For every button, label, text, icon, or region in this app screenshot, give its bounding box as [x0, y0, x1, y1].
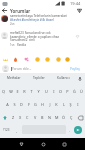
staticText: 1sn — [10, 43, 15, 47]
button[interactable]: Fire — [12, 56, 18, 62]
button[interactable]: L — [60, 98, 67, 111]
staticText: B — [41, 115, 44, 120]
button[interactable]: Kullanıcı — [57, 76, 70, 80]
button[interactable]: Ü — [78, 85, 85, 98]
staticText: L — [63, 102, 65, 107]
staticText: Q — [2, 89, 5, 94]
button[interactable]: A — [4, 98, 11, 111]
staticText: Ö — [62, 115, 65, 120]
button[interactable]: mefteE23 Sonuclandi ve cok — [0, 31, 85, 48]
staticText: mefteE23 Sonuclandi ve cok — [10, 31, 51, 35]
button[interactable]: Paylaş — [69, 66, 81, 72]
staticText: Paylaş — [70, 67, 80, 71]
staticText: W — [9, 89, 13, 94]
staticText: X — [19, 115, 22, 120]
staticText: K — [55, 102, 58, 107]
staticText: J — [49, 102, 51, 107]
button[interactable]: I — [74, 98, 81, 111]
button[interactable]: X — [17, 111, 24, 124]
button[interactable]: P — [64, 85, 71, 98]
staticText: D — [20, 102, 23, 107]
button[interactable]: O — [57, 85, 64, 98]
button[interactable]: F — [25, 98, 32, 111]
button[interactable]: Ğ — [71, 85, 78, 98]
staticText: Ş — [69, 102, 72, 107]
staticText: ?123 — [3, 128, 10, 132]
staticText: Sonudhost2 cinli — [10, 38, 35, 42]
button[interactable]: , — [13, 124, 21, 136]
button[interactable]: H — [39, 98, 46, 111]
button[interactable]: R — [21, 85, 28, 98]
staticText: Ç — [70, 115, 73, 120]
button[interactable]: Ç — [68, 111, 75, 124]
button[interactable]: Back — [0, 7, 9, 14]
button[interactable]: B — [39, 111, 46, 124]
button[interactable]: Wow — [55, 56, 61, 62]
button[interactable]: Methalar — [7, 76, 21, 80]
staticText: . — [69, 128, 71, 133]
staticText: F — [28, 102, 30, 107]
staticText: N — [48, 115, 51, 120]
staticText: 19:44 — [70, 1, 81, 6]
button[interactable]: Backspace — [76, 111, 85, 124]
button[interactable]: Sparkles — [23, 56, 29, 62]
staticText: E — [16, 89, 19, 94]
button[interactable]: Like — [74, 33, 80, 39]
button[interactable]: G — [32, 98, 39, 111]
button[interactable]: J — [46, 98, 53, 111]
button[interactable]: K — [53, 98, 60, 111]
button[interactable]: Home — [37, 138, 49, 150]
button[interactable]: M — [53, 111, 60, 124]
button[interactable]: E — [14, 85, 21, 98]
button[interactable]: sametcetinkaya Telefonlarin kameralari — [0, 14, 85, 30]
staticText: O — [59, 89, 62, 94]
button[interactable]: Laughing — [34, 56, 40, 62]
button[interactable]: V — [32, 111, 39, 124]
button[interactable]: Back — [15, 138, 27, 150]
staticText: C — [26, 115, 29, 120]
staticText: V — [34, 115, 37, 120]
button[interactable]: N — [46, 111, 53, 124]
button[interactable]: ?123 — [0, 124, 13, 136]
button[interactable]: W — [7, 85, 14, 98]
button[interactable]: Q — [0, 85, 7, 98]
button[interactable]: Crying — [44, 56, 50, 62]
staticText: 2sn — [10, 22, 15, 26]
staticText: G — [34, 102, 37, 107]
staticText: , — [16, 128, 18, 133]
button[interactable]: Crown — [2, 56, 8, 62]
button[interactable]: C — [24, 111, 31, 124]
staticText: Y — [37, 89, 40, 94]
button[interactable]: Voice input — [76, 75, 83, 82]
button[interactable]: U — [43, 85, 50, 98]
staticText: Ü — [80, 89, 83, 94]
button[interactable]: Shift — [0, 111, 9, 124]
staticText: I — [53, 89, 55, 94]
button[interactable]: Tepkiler — [33, 76, 45, 80]
staticText: S — [13, 102, 16, 107]
staticText: Yorum ekle... — [12, 67, 32, 71]
staticText: sametcetinkaya Telefonlarin kameralari — [10, 14, 68, 18]
button[interactable]: Share — [76, 7, 83, 14]
staticText: U — [45, 89, 48, 94]
button[interactable]: Pray — [64, 56, 70, 62]
button[interactable]: S — [11, 98, 18, 111]
staticText: #kesfet #kesfetteyiz #ilk #ozel — [10, 18, 54, 22]
button[interactable]: D — [18, 98, 25, 111]
staticText: Ğ — [73, 89, 76, 94]
staticText: kazandiniz, elimde o yapilan cihaz — [10, 35, 59, 39]
button[interactable]: Ş — [67, 98, 74, 111]
button[interactable]: T — [28, 85, 35, 98]
staticText: Z — [12, 115, 15, 120]
button[interactable]: I — [50, 85, 57, 98]
staticText: M — [55, 115, 59, 120]
button[interactable]: Recents — [58, 138, 70, 150]
button[interactable]: Y — [35, 85, 42, 98]
staticText: T — [30, 89, 33, 94]
button[interactable]: Send — [74, 126, 82, 134]
staticText: A — [6, 102, 9, 107]
button[interactable]: Z — [10, 111, 17, 124]
button[interactable]: Ö — [60, 111, 67, 124]
